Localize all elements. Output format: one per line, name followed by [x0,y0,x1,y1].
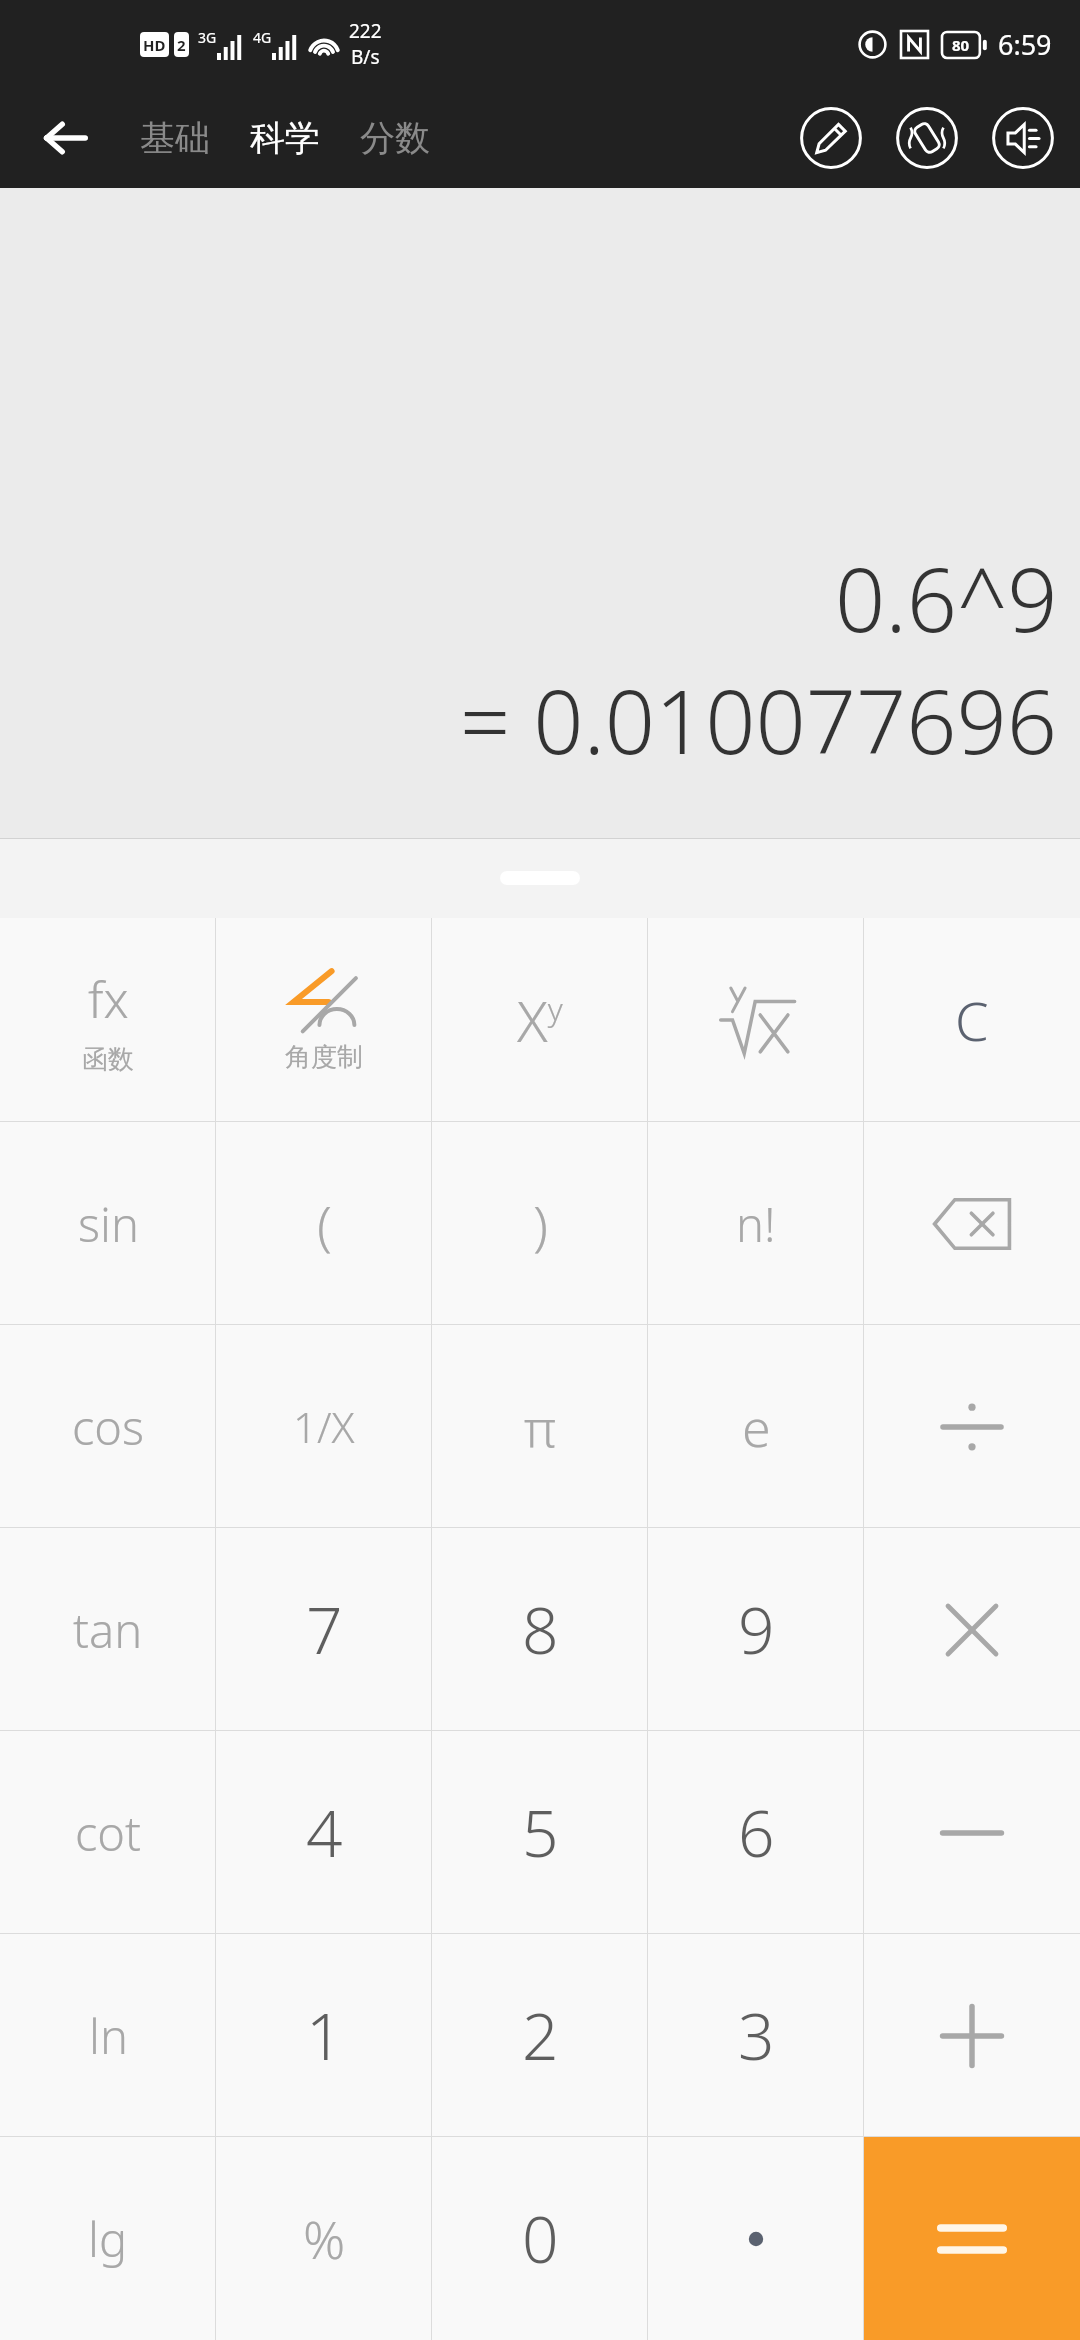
button[interactable]: Minus [864,1731,1080,1934]
staticText: 3 [738,1992,775,2079]
button[interactable]: ) [432,1122,648,1325]
button[interactable]: Back [26,99,104,177]
button[interactable]: C [864,918,1080,1122]
button[interactable]: Equals [864,2137,1080,2340]
button[interactable]: Vibrate [890,101,964,175]
button[interactable]: Edit [794,101,868,175]
staticText: B/s [351,44,380,70]
staticText: 2 [177,35,186,55]
staticText: 1/X [293,1398,355,1455]
staticText: HD [143,35,166,55]
staticText: tan [73,1598,143,1662]
button[interactable]: ln [0,1934,216,2137]
button[interactable]: 4 [216,1731,432,1934]
staticText: % [303,2203,346,2274]
button[interactable]: 8 [432,1528,648,1731]
staticText: = 0.010077696 [460,660,1058,780]
button[interactable]: Plus [864,1934,1080,2137]
staticText: 5 [522,1789,559,1876]
staticText: 函数 [82,1043,134,1076]
button[interactable]: Decimal point [648,2137,864,2340]
button[interactable]: 1/X [216,1325,432,1528]
button[interactable]: n! [648,1122,864,1325]
button[interactable]: 科学 [246,108,324,168]
staticText: ) [533,1187,548,1261]
button[interactable]: 1 [216,1934,432,2137]
staticText: 0.6^9 [835,538,1058,658]
staticText: Xy [517,982,563,1058]
button[interactable]: cos [0,1325,216,1528]
button[interactable]: 9 [648,1528,864,1731]
staticText: 9 [738,1586,775,1673]
staticText: 科学 [250,116,320,160]
staticText: 基础 [140,116,210,160]
button[interactable]: Backspace [864,1122,1080,1325]
staticText: cot [75,1801,142,1865]
staticText: 80 [952,35,970,55]
staticText: 0 [522,2195,559,2282]
button[interactable]: 2 [432,1934,648,2137]
staticText: 8 [522,1586,559,1673]
staticText: C [955,983,989,1057]
staticText: 7 [306,1586,343,1673]
button[interactable]: % [216,2137,432,2340]
staticText: sin [78,1192,139,1256]
button[interactable]: Divide [864,1325,1080,1528]
staticText: 6 [738,1789,775,1876]
button[interactable]: lg [0,2137,216,2340]
staticText: lg [88,2207,128,2271]
staticText: cos [72,1395,145,1459]
staticText: 222 [349,18,382,44]
staticText: π [524,1391,557,1462]
staticText: n! [736,1192,776,1256]
staticText: 2 [522,1992,559,2079]
staticText: 3G [198,28,217,47]
staticText: ( [317,1187,332,1261]
button[interactable]: 7 [216,1528,432,1731]
button[interactable]: e [648,1325,864,1528]
button[interactable]: 基础 [136,108,214,168]
button[interactable]: ( [216,1122,432,1325]
button[interactable]: sin [0,1122,216,1325]
button[interactable]: Angle unit [216,918,432,1122]
button[interactable]: Y-th root of X [648,918,864,1122]
button[interactable]: tan [0,1528,216,1731]
staticText: ln [89,2004,128,2068]
staticText: 分数 [360,116,430,160]
staticText: 1 [306,1992,343,2079]
button[interactable]: Multiply [864,1528,1080,1731]
staticText: 4G [253,28,272,47]
button[interactable]: 0 [432,2137,648,2340]
staticText: 角度制 [285,1041,363,1074]
button[interactable]: cot [0,1731,216,1934]
button[interactable]: fx [0,918,216,1122]
staticText: e [742,1391,771,1462]
button[interactable]: 6 [648,1731,864,1934]
staticText: fx [88,965,129,1033]
button[interactable]: Sound [986,101,1060,175]
button[interactable]: X to the power Y [432,918,648,1122]
button[interactable]: 5 [432,1731,648,1934]
staticText: 4 [306,1789,343,1876]
button[interactable]: 3 [648,1934,864,2137]
button[interactable]: π [432,1325,648,1528]
button[interactable]: 分数 [356,108,434,168]
staticText: 6:59 [998,26,1052,63]
